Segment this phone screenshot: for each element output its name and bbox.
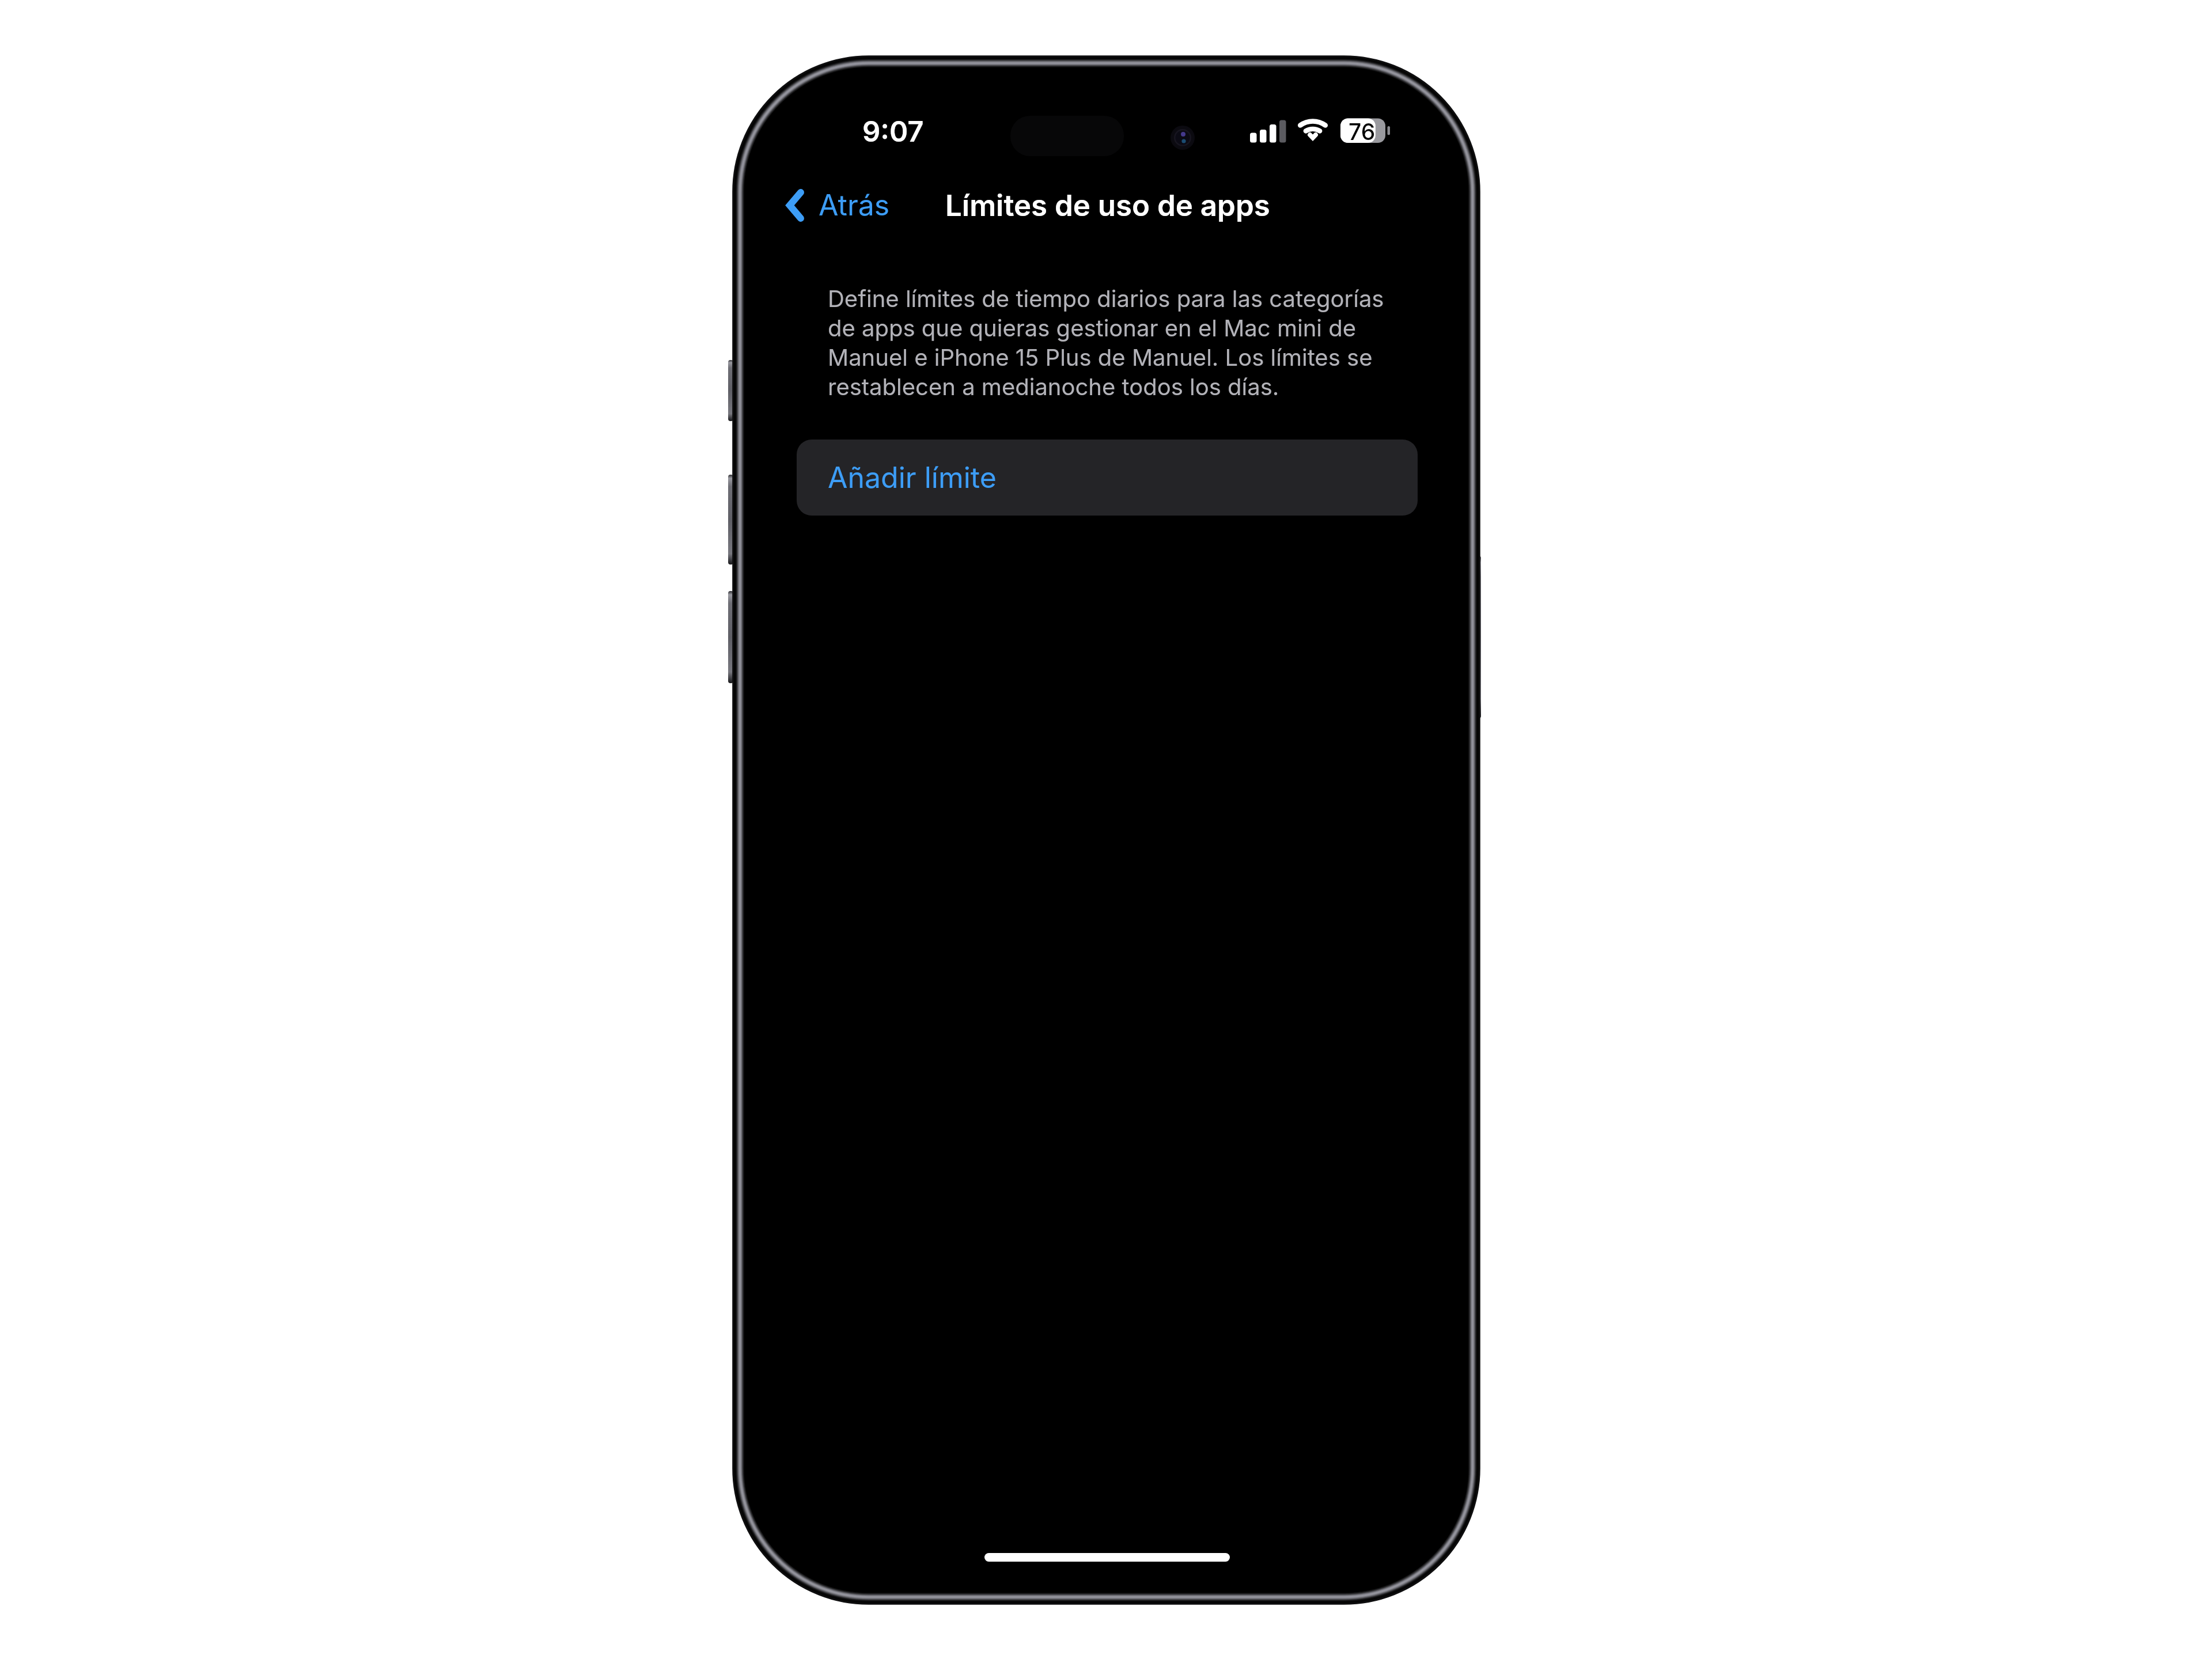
- button[interactable]: Añadir límite: [797, 440, 1418, 516]
- other: Cellular signal: [1250, 118, 1286, 145]
- other: Wi-Fi: [1297, 114, 1328, 138]
- staticText: Añadir límite: [828, 460, 997, 495]
- staticText: Atrás: [819, 188, 890, 222]
- staticText: 76: [1349, 118, 1376, 145]
- staticText: Límites de uso de apps: [945, 188, 1270, 224]
- staticText: Define límites de tiempo diarios para la…: [828, 283, 1395, 401]
- button[interactable]: Atrás: [771, 173, 915, 238]
- staticText: 9:07: [862, 115, 924, 149]
- other: Battery 76 percent: [1340, 118, 1392, 143]
